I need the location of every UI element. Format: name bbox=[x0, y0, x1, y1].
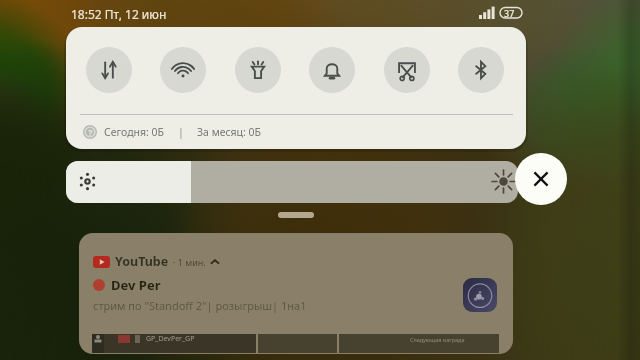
staticText: Сегодня: 0Б bbox=[104, 125, 165, 139]
staticText: стрим по "Standoff 2"| розыгрыш| 1на1 bbox=[93, 298, 307, 313]
staticText: За месяц: 0Б bbox=[197, 125, 262, 139]
button[interactable]: Close bbox=[515, 153, 567, 205]
staticText: GP_DevPer_GP bbox=[146, 334, 195, 344]
staticText: Следующая награда bbox=[410, 336, 465, 343]
button[interactable]: Wi-Fi bbox=[160, 47, 206, 93]
staticText: · 1 мин. bbox=[173, 256, 206, 268]
button[interactable]: Brightness bbox=[66, 161, 518, 203]
staticText: YouTube bbox=[115, 253, 169, 270]
button[interactable]: Mobile data bbox=[86, 47, 132, 93]
staticText: | bbox=[178, 125, 184, 139]
button[interactable]: Screenshot bbox=[384, 47, 430, 93]
staticText: Dev Per bbox=[111, 276, 161, 294]
button[interactable]: Do not disturb bbox=[309, 47, 355, 93]
button[interactable]: Bluetooth bbox=[458, 47, 504, 93]
button[interactable]: YouTube bbox=[79, 233, 513, 354]
staticText: ? bbox=[88, 126, 93, 138]
button[interactable]: Flashlight bbox=[235, 47, 281, 93]
staticText: 37 bbox=[504, 7, 515, 19]
staticText: 18:52 Пт, 12 июн bbox=[71, 6, 167, 22]
